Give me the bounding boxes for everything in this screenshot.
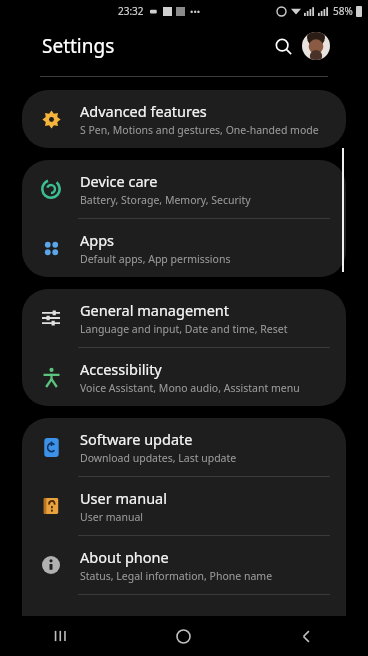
button[interactable]: Apps [22,219,346,277]
staticText: About phone [80,547,169,567]
staticText: Battery, Storage, Memory, Security [80,193,251,207]
staticText: Device care [80,171,158,191]
staticText: General management [80,300,230,320]
staticText: User manual [80,510,143,524]
button[interactable]: Device care [22,160,346,218]
staticText: Accessibility [80,359,162,379]
button[interactable]: About phone [22,536,346,594]
staticText: 58% [333,4,353,18]
button[interactable]: Search [268,31,298,61]
staticText: ••• [190,5,201,17]
button[interactable]: Home [122,616,245,656]
button[interactable]: User manual [22,477,346,535]
button[interactable]: Back [245,616,368,656]
button[interactable]: Profile [302,32,330,60]
button[interactable]: Developer options [22,595,346,653]
button[interactable]: Recents [0,616,122,656]
staticText: Developer options [80,614,205,634]
staticText: Status, Legal information, Phone name [80,569,273,583]
staticText: Settings [42,33,115,59]
button[interactable]: Software update [22,418,346,476]
staticText: 23:32 [118,4,144,18]
staticText: Language and input, Date and time, Reset [80,322,288,336]
button[interactable]: General management [22,289,346,347]
staticText: Advanced features [80,101,207,121]
staticText: Voice Assistant, Mono audio, Assistant m… [80,381,300,395]
button[interactable]: Accessibility [22,348,346,406]
button[interactable]: Advanced features [22,90,346,148]
staticText: User manual [80,488,167,508]
staticText: Apps [80,230,115,250]
staticText: Default apps, App permissions [80,252,231,266]
staticText: Download updates, Last update [80,451,237,465]
staticText: S Pen, Motions and gestures, One-handed … [80,123,319,137]
staticText: Software update [80,429,193,449]
